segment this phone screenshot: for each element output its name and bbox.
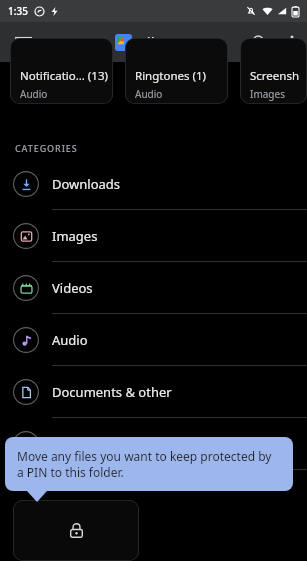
button[interactable]: Images (0, 210, 307, 262)
staticText: 1:35 (8, 4, 28, 18)
button[interactable]: Apps (0, 418, 307, 470)
button[interactable]: Open navigation menu (0, 22, 46, 62)
staticText: CATEGORIES (15, 142, 78, 154)
staticText: Ringtones (1) (135, 68, 206, 84)
button[interactable]: Downloads (0, 158, 307, 210)
button[interactable]: Search (241, 22, 277, 62)
staticText: Apps (52, 435, 83, 453)
staticText: Videos (52, 279, 93, 297)
staticText: Notificatio… (13) (20, 68, 108, 84)
button[interactable]: Notificatio… (13) (10, 38, 113, 104)
staticText: Files (139, 32, 171, 52)
staticText: Images (250, 87, 285, 101)
staticText: Images (52, 227, 98, 245)
button[interactable]: Screensh… (1 (240, 38, 307, 104)
staticText: Audio (135, 87, 163, 101)
button[interactable]: Videos (0, 262, 307, 314)
button[interactable]: Documents & other (0, 366, 307, 418)
staticText: Audio (20, 87, 48, 101)
staticText: Audio (52, 331, 88, 349)
button[interactable]: Audio (0, 314, 307, 366)
button[interactable]: More options (277, 22, 307, 62)
staticText: Screensh… (1 (250, 68, 307, 84)
button[interactable]: Ringtones (1) (125, 38, 228, 104)
button[interactable]: Move any files you want to keep protecte… (5, 437, 293, 491)
staticText: Move any files you want to keep protecte… (17, 448, 281, 480)
staticText: Downloads (52, 175, 121, 193)
button[interactable]: Safe folder (13, 500, 139, 561)
staticText: Documents & other (52, 383, 172, 401)
